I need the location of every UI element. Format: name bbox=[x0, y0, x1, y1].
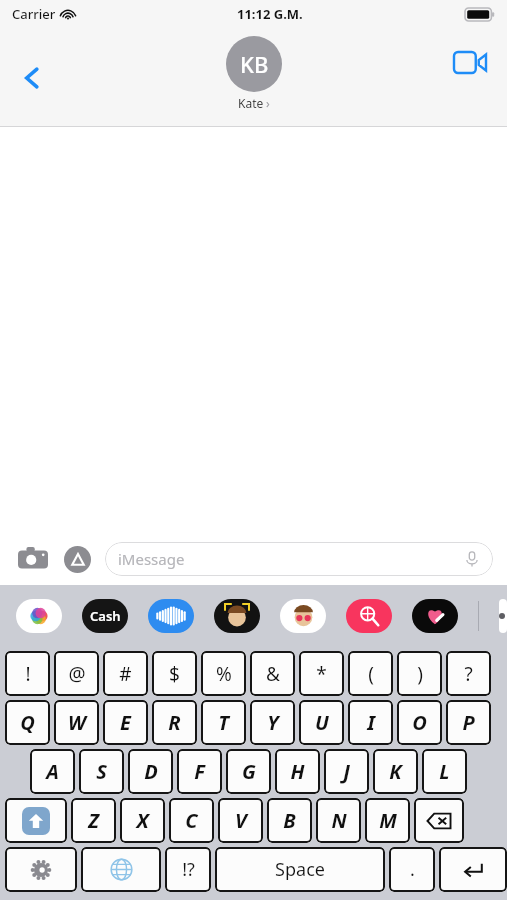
staticText: $ bbox=[169, 661, 180, 687]
button[interactable]: H bbox=[275, 749, 320, 794]
button[interactable]: S bbox=[79, 749, 124, 794]
staticText: P bbox=[462, 709, 475, 736]
button[interactable]: V bbox=[218, 798, 263, 843]
staticText: 11:12 G.M. bbox=[237, 5, 303, 23]
button[interactable]: K bbox=[373, 749, 418, 794]
staticText: Z bbox=[88, 807, 99, 834]
staticText: % bbox=[216, 661, 232, 687]
staticText: Space bbox=[275, 857, 325, 882]
staticText: N bbox=[331, 807, 347, 834]
button[interactable]: I bbox=[348, 700, 393, 745]
staticText: G bbox=[242, 758, 256, 785]
button[interactable]: D bbox=[128, 749, 173, 794]
button[interactable]: Digital Touch bbox=[412, 599, 458, 633]
button[interactable]: $ bbox=[152, 651, 197, 696]
staticText: # bbox=[119, 661, 132, 687]
button[interactable]: W bbox=[54, 700, 99, 745]
button[interactable]: M bbox=[365, 798, 410, 843]
button[interactable]: Back bbox=[6, 52, 58, 104]
staticText: iMessage bbox=[118, 549, 185, 569]
staticText: * bbox=[316, 661, 327, 687]
button[interactable]: App Store bbox=[58, 540, 96, 578]
staticText: V bbox=[235, 807, 247, 834]
button[interactable]: Audio message bbox=[148, 599, 194, 633]
button[interactable]: Shift bbox=[5, 798, 67, 843]
staticText: KB bbox=[240, 49, 269, 79]
button[interactable]: Apple Cash bbox=[82, 599, 128, 633]
staticText: I bbox=[367, 709, 375, 736]
staticText: U bbox=[315, 709, 329, 736]
staticText: A bbox=[46, 758, 59, 785]
button[interactable]: Return bbox=[439, 847, 507, 892]
button[interactable]: L bbox=[422, 749, 467, 794]
button[interactable]: C bbox=[169, 798, 214, 843]
staticText: M bbox=[379, 807, 397, 834]
button[interactable]: E bbox=[103, 700, 148, 745]
button[interactable]: Settings bbox=[5, 847, 77, 892]
button[interactable]: iMessage bbox=[105, 542, 493, 576]
button[interactable]: More apps bbox=[499, 599, 507, 633]
staticText: ! bbox=[25, 661, 31, 687]
staticText: D bbox=[144, 758, 158, 785]
button[interactable]: ( bbox=[348, 651, 393, 696]
button[interactable]: Next keyboard bbox=[81, 847, 161, 892]
staticText: ) bbox=[417, 661, 423, 687]
button[interactable]: Backspace bbox=[414, 798, 464, 843]
staticText: Kate bbox=[238, 95, 264, 111]
button[interactable]: G bbox=[226, 749, 271, 794]
button[interactable]: F bbox=[177, 749, 222, 794]
button[interactable]: N bbox=[316, 798, 361, 843]
button[interactable]: % bbox=[201, 651, 246, 696]
staticText: Q bbox=[20, 709, 35, 736]
button[interactable]: A bbox=[30, 749, 75, 794]
button[interactable]: # bbox=[103, 651, 148, 696]
button[interactable]: Q bbox=[5, 700, 50, 745]
staticText: K bbox=[389, 758, 402, 785]
staticText: C bbox=[185, 807, 198, 834]
button[interactable]: O bbox=[397, 700, 442, 745]
staticText: . bbox=[410, 857, 415, 882]
button[interactable]: ! bbox=[5, 651, 50, 696]
staticText: › bbox=[266, 95, 270, 111]
button[interactable]: KB bbox=[226, 36, 282, 111]
button[interactable]: . bbox=[389, 847, 435, 892]
staticText: !? bbox=[182, 857, 195, 882]
button[interactable]: U bbox=[299, 700, 344, 745]
button[interactable]: X bbox=[120, 798, 165, 843]
button[interactable]: T bbox=[201, 700, 246, 745]
button[interactable]: Memoji stickers bbox=[280, 599, 326, 633]
button[interactable]: Camera bbox=[14, 540, 52, 578]
staticText: E bbox=[120, 709, 131, 736]
button[interactable]: & bbox=[250, 651, 295, 696]
button[interactable]: FaceTime video call bbox=[447, 39, 493, 85]
staticText: R bbox=[168, 709, 181, 736]
staticText: Cash bbox=[90, 607, 121, 625]
button[interactable]: ? bbox=[446, 651, 491, 696]
staticText: Carrier bbox=[12, 5, 56, 23]
staticText: ? bbox=[464, 661, 473, 687]
staticText: L bbox=[439, 758, 450, 785]
button[interactable]: * bbox=[299, 651, 344, 696]
staticText: Y bbox=[267, 709, 279, 736]
staticText: S bbox=[96, 758, 107, 785]
button[interactable]: Space bbox=[215, 847, 385, 892]
button[interactable]: ) bbox=[397, 651, 442, 696]
button[interactable]: !? bbox=[165, 847, 211, 892]
staticText: B bbox=[283, 807, 296, 834]
staticText: & bbox=[266, 661, 280, 687]
staticText: H bbox=[290, 758, 305, 785]
staticText: F bbox=[194, 758, 205, 785]
button[interactable]: Photos bbox=[16, 599, 62, 633]
button[interactable]: @ bbox=[54, 651, 99, 696]
button[interactable]: P bbox=[446, 700, 491, 745]
button[interactable]: #images bbox=[346, 599, 392, 633]
button[interactable]: J bbox=[324, 749, 369, 794]
staticText: ( bbox=[368, 661, 374, 687]
button[interactable]: B bbox=[267, 798, 312, 843]
staticText: J bbox=[343, 758, 350, 785]
button[interactable]: Memoji bbox=[214, 599, 260, 633]
button[interactable]: Y bbox=[250, 700, 295, 745]
button[interactable]: R bbox=[152, 700, 197, 745]
staticText: X bbox=[136, 807, 149, 834]
button[interactable]: Z bbox=[71, 798, 116, 843]
